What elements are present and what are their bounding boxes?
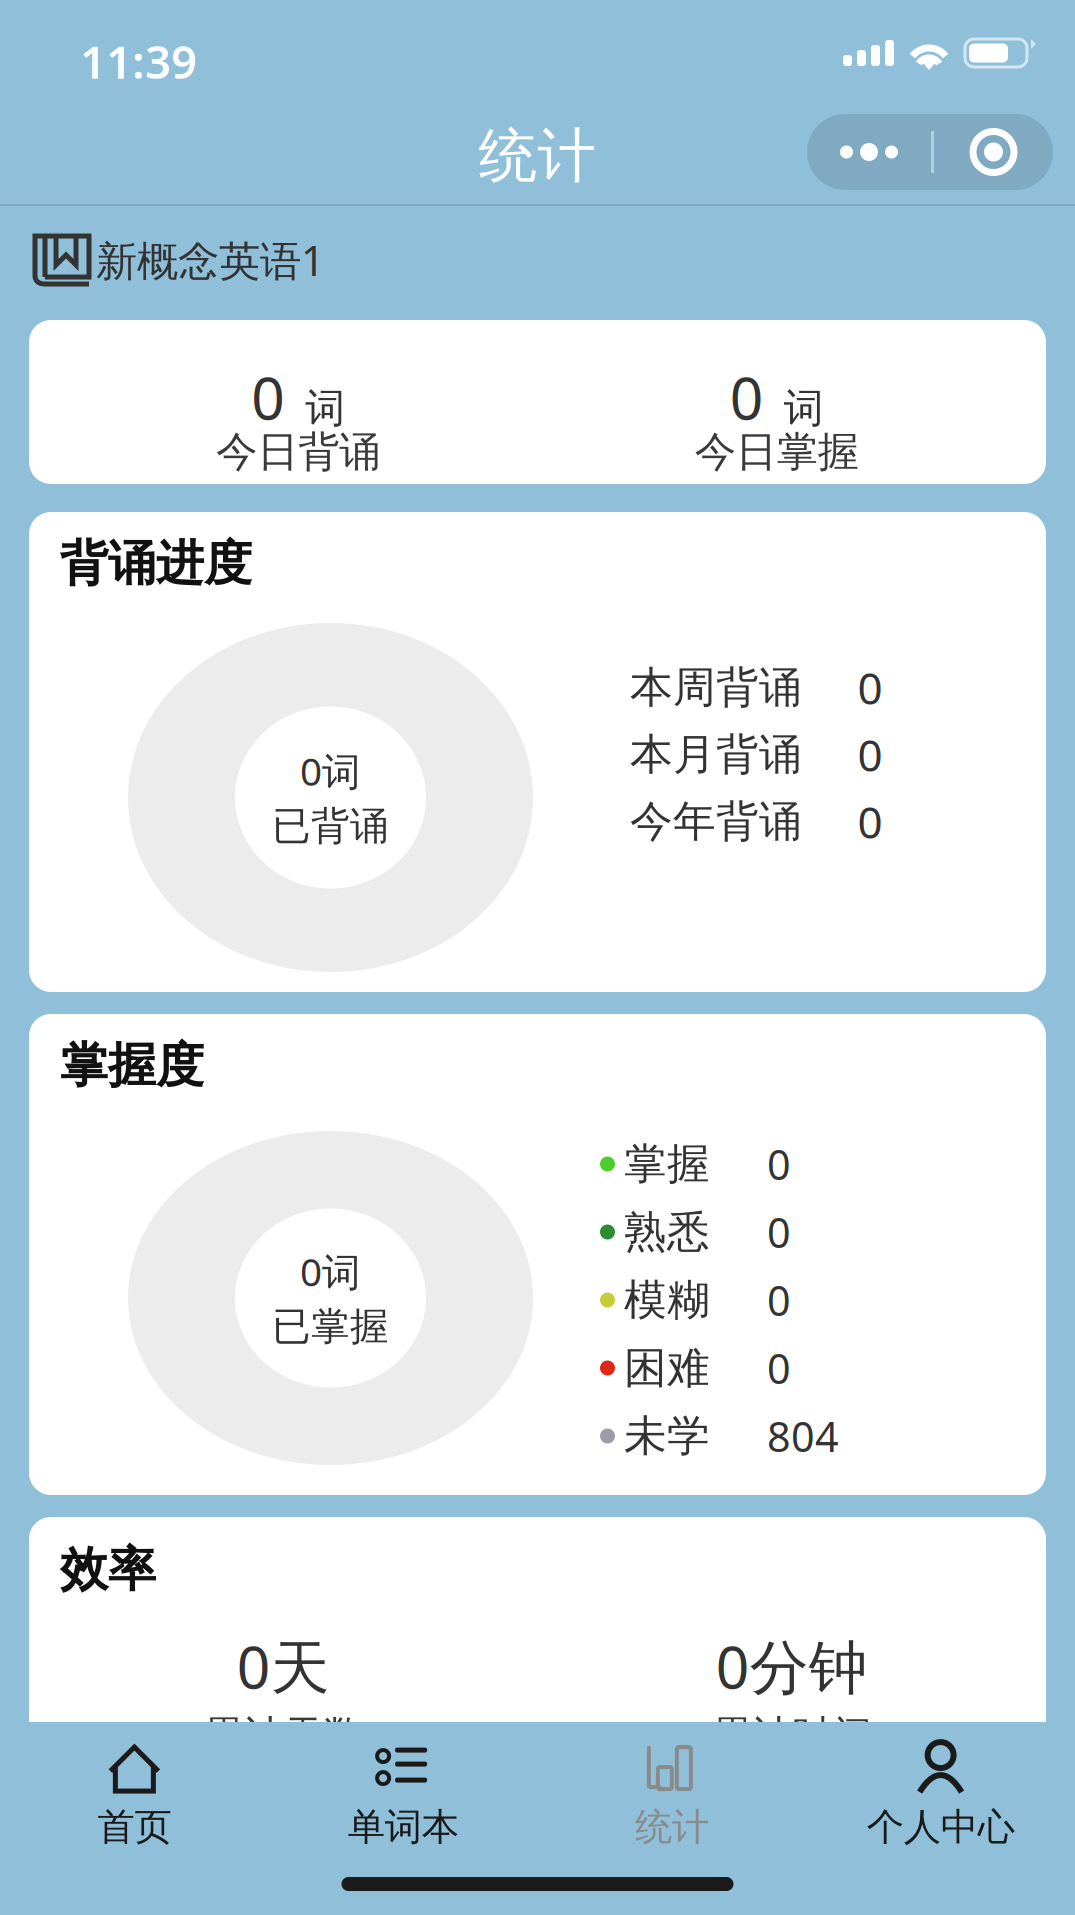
staticText: 0: [767, 1273, 791, 1327]
staticText: 已背诵: [272, 802, 389, 850]
staticText: 词: [305, 384, 345, 433]
staticText: 今日掌握: [695, 427, 859, 477]
staticText: 0: [730, 358, 764, 436]
staticText: 0: [767, 1341, 791, 1395]
staticText: 模糊: [624, 1274, 710, 1326]
staticText: 已掌握: [272, 1303, 389, 1350]
staticText: 0: [767, 1137, 791, 1191]
button[interactable]: 首页: [0, 1722, 269, 1870]
staticText: 0词: [300, 745, 361, 796]
staticText: 统计: [478, 120, 596, 192]
staticText: 本月背诵: [630, 728, 802, 781]
staticText: 新概念英语1: [96, 233, 325, 287]
staticText: 0词: [300, 1246, 361, 1297]
button[interactable]: 单词本: [269, 1722, 538, 1870]
staticText: 累计时间: [712, 1711, 872, 1760]
staticText: 11:39: [80, 31, 197, 91]
staticText: 0: [857, 792, 882, 851]
staticText: 单词本: [348, 1804, 459, 1850]
staticText: 今日背诵: [216, 427, 380, 477]
staticText: 统计: [635, 1804, 709, 1850]
staticText: 0天: [237, 1627, 330, 1705]
staticText: 累计天数: [203, 1711, 363, 1760]
staticText: 0: [857, 725, 882, 784]
staticText: 本周背诵: [630, 661, 802, 714]
staticText: 0: [857, 658, 882, 717]
staticText: 熟悉: [624, 1206, 710, 1258]
staticText: 首页: [97, 1804, 171, 1850]
staticText: 困难: [624, 1342, 710, 1394]
staticText: 掌握度: [60, 1036, 204, 1095]
staticText: 词: [784, 384, 824, 433]
button[interactable]: More options: [807, 114, 1053, 190]
staticText: 个人中心: [867, 1804, 1015, 1850]
staticText: 0: [767, 1205, 791, 1259]
staticText: 0分钟: [716, 1627, 868, 1705]
staticText: 804: [767, 1409, 839, 1463]
staticText: 未学: [624, 1410, 710, 1462]
staticText: 背诵进度: [60, 534, 252, 593]
button[interactable]: 统计: [537, 1722, 806, 1870]
button[interactable]: 个人中心: [806, 1722, 1075, 1870]
staticText: 掌握: [624, 1138, 710, 1190]
staticText: 0: [251, 358, 285, 436]
staticText: 效率: [60, 1540, 156, 1599]
staticText: 今年背诵: [630, 795, 802, 848]
